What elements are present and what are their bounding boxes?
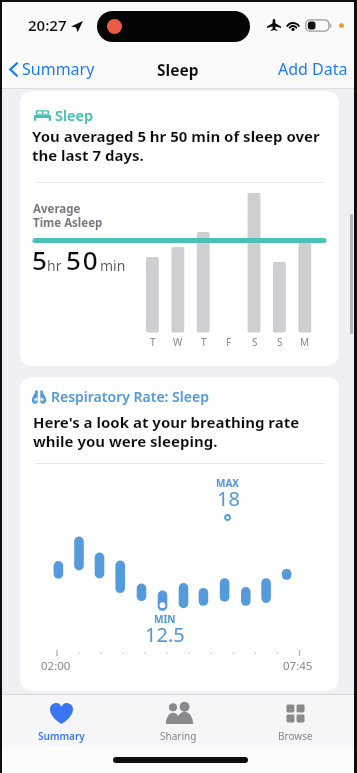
- button[interactable]: Summary: [6, 50, 98, 88]
- button[interactable]: Summary: [2, 695, 120, 747]
- staticText: 12.5: [145, 621, 185, 648]
- staticText: S: [277, 335, 283, 349]
- staticText: F: [226, 335, 232, 349]
- staticText: Here's a look at your breathing rate whi…: [33, 412, 323, 451]
- staticText: You averaged 5 hr 50 min of sleep over t…: [32, 126, 328, 165]
- staticText: Browse: [278, 729, 313, 743]
- staticText: T: [150, 335, 156, 349]
- staticText: 02:00: [41, 658, 71, 674]
- staticText: 50: [66, 242, 100, 277]
- staticText: Sleep: [157, 59, 199, 80]
- staticText: Sleep: [55, 105, 94, 125]
- staticText: 5: [32, 242, 47, 277]
- staticText: 07:45: [283, 658, 313, 674]
- staticText: 20:27: [28, 15, 67, 35]
- staticText: M: [300, 335, 310, 349]
- staticText: min: [100, 256, 126, 275]
- staticText: Average: [33, 201, 81, 217]
- button[interactable]: Sharing: [120, 695, 237, 747]
- staticText: hr: [47, 256, 66, 275]
- staticText: S: [252, 335, 258, 349]
- button[interactable]: Add Data: [267, 50, 354, 88]
- staticText: 18: [217, 485, 240, 512]
- staticText: MAX: [216, 476, 240, 490]
- staticText: MIN: [154, 612, 176, 626]
- staticText: Add Data: [278, 58, 348, 80]
- staticText: Respiratory Rate: Sleep: [51, 387, 209, 406]
- staticText: Summary: [38, 729, 85, 743]
- button[interactable]: Respiratory Rate: Sleep: [20, 377, 339, 691]
- staticText: Time Asleep: [33, 215, 103, 231]
- staticText: Summary: [22, 58, 95, 80]
- staticText: T: [201, 335, 207, 349]
- staticText: W: [173, 335, 183, 349]
- button[interactable]: Sleep: [20, 91, 339, 366]
- button[interactable]: Browse: [237, 695, 354, 747]
- staticText: Sharing: [160, 729, 197, 743]
